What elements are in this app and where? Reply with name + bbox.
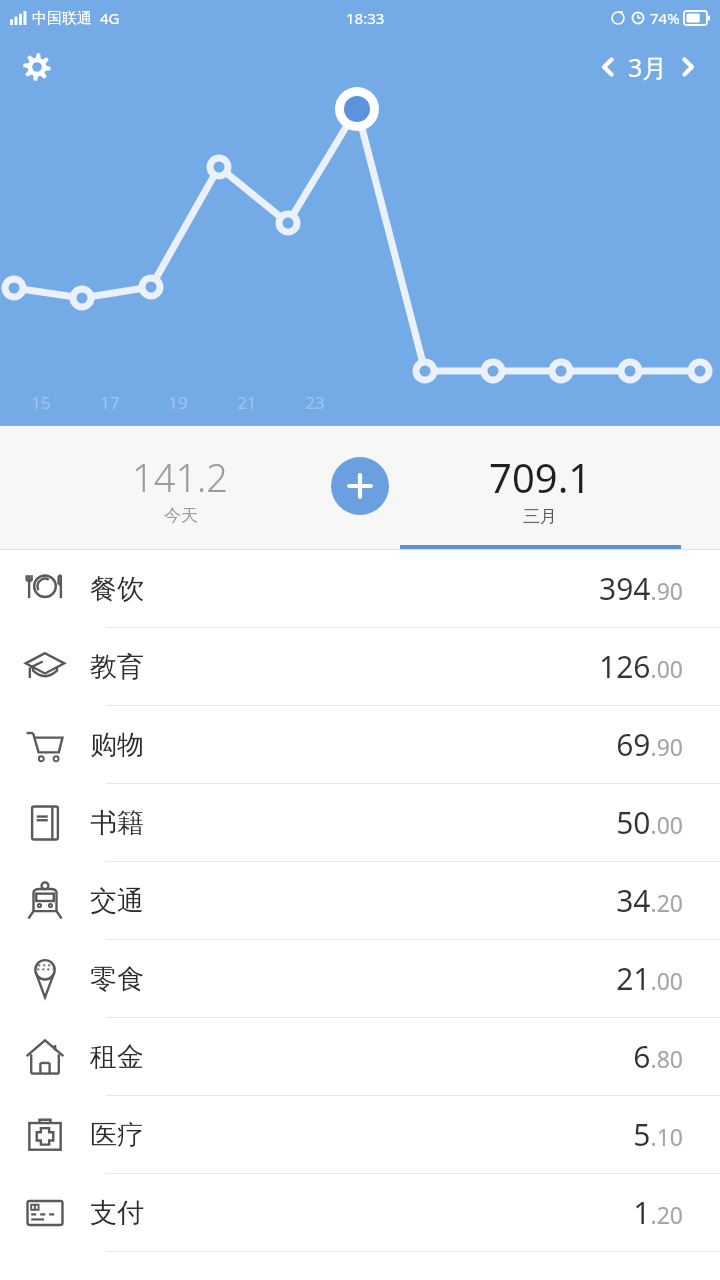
staticText: 6.80 <box>633 1036 683 1077</box>
staticText: 69.90 <box>616 724 683 765</box>
button[interactable]: Add record <box>331 457 389 515</box>
button[interactable]: 支付 <box>0 1174 720 1252</box>
staticText: 141.2 <box>132 451 229 503</box>
staticText: 教育 <box>90 650 144 684</box>
button[interactable]: Next month <box>668 47 708 87</box>
staticText: 1.20 <box>633 1192 683 1233</box>
button[interactable]: 教育 <box>0 628 720 706</box>
staticText: 5.10 <box>633 1114 683 1155</box>
staticText: 21.00 <box>616 958 683 999</box>
staticText: 4G <box>100 8 120 28</box>
staticText: 34.20 <box>616 880 683 921</box>
staticText: 三月 <box>523 506 557 527</box>
button[interactable]: 141.2 <box>0 426 360 550</box>
staticText: 3月 <box>628 50 668 84</box>
button[interactable]: 租金 <box>0 1018 720 1096</box>
button[interactable]: 餐饮 <box>0 550 720 628</box>
staticText: 支付 <box>90 1196 144 1230</box>
staticText: 23 <box>295 391 335 414</box>
button[interactable]: 书籍 <box>0 784 720 862</box>
staticText: 17 <box>90 391 130 414</box>
staticText: 租金 <box>90 1040 144 1074</box>
staticText: 19 <box>158 391 198 414</box>
button[interactable]: 购物 <box>0 706 720 784</box>
staticText: 50.00 <box>616 802 683 843</box>
staticText: 15 <box>21 391 61 414</box>
staticText: 交通 <box>90 884 144 918</box>
button[interactable]: 709.1 <box>360 426 720 550</box>
staticText: 126.00 <box>599 646 683 687</box>
staticText: 购物 <box>90 728 144 762</box>
staticText: 18:33 <box>346 8 385 28</box>
staticText: 零食 <box>90 962 144 996</box>
staticText: 书籍 <box>90 806 144 840</box>
staticText: 74% <box>650 8 680 28</box>
button[interactable]: 交通 <box>0 862 720 940</box>
button[interactable]: Settings <box>12 42 62 92</box>
staticText: 709.1 <box>489 450 592 504</box>
staticText: 医疗 <box>90 1118 144 1152</box>
staticText: 今天 <box>164 505 198 526</box>
button[interactable]: Previous month <box>588 47 628 87</box>
staticText: 中国联通 <box>32 9 92 28</box>
staticText: 394.90 <box>599 568 683 609</box>
button[interactable]: 医疗 <box>0 1096 720 1174</box>
staticText: 21 <box>227 391 267 414</box>
button[interactable]: 零食 <box>0 940 720 1018</box>
staticText: 餐饮 <box>90 572 144 606</box>
